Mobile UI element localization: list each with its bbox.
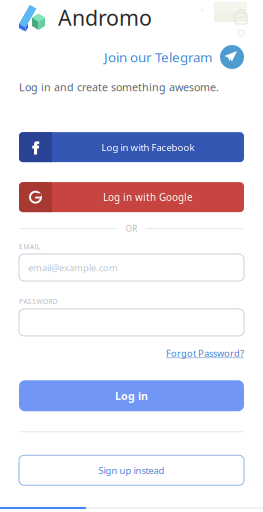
button[interactable]: Join our Telegram [104, 45, 244, 69]
staticText: Log in with Google [103, 190, 193, 204]
button[interactable]: Sign up instead [19, 455, 244, 485]
staticText: Log in [115, 389, 148, 403]
staticText: Log in and create something awesome. [19, 80, 219, 94]
staticText: Log in with Facebook [101, 141, 194, 154]
staticText: Forgot Password? [166, 347, 244, 359]
staticText: Sign up instead [98, 464, 164, 476]
staticText: OR [126, 223, 137, 234]
staticText: Join our Telegram [104, 48, 212, 66]
button[interactable]: Log in with Google [19, 182, 244, 212]
staticText: Andromo [58, 3, 152, 32]
button[interactable]: Log in [19, 380, 244, 411]
staticText: email@example.com [28, 261, 118, 274]
staticText: PASSWORD [19, 297, 58, 306]
button[interactable]: Forgot Password? [166, 347, 244, 359]
staticText: EMAIL [19, 242, 40, 251]
button[interactable]: Log in with Facebook [19, 132, 244, 162]
